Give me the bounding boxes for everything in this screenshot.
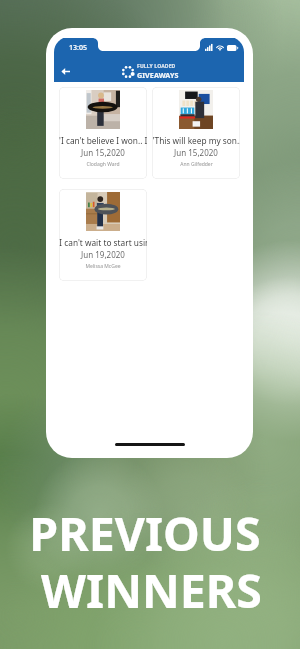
staticText: GIVEAWAYS [137,70,179,80]
staticText: Jun 19,2020 [81,249,125,260]
staticText: Melissa McGee [85,263,121,270]
button[interactable]: 'This will keep my son… [152,87,240,179]
button[interactable]: I can't wait to start usin… [59,189,147,281]
staticText: PREVIOUS [29,501,261,564]
staticText: Jun 15,2020 [81,147,125,158]
staticText: 'I can't believe I won.. I… [59,135,147,146]
staticText: Jun 15,2020 [174,147,218,158]
staticText: WINNERS [41,558,262,621]
button[interactable]: Back [56,62,75,81]
staticText: Clodagh Ward [86,161,120,168]
staticText: 13:05 [69,43,87,53]
staticText: FULLY LOADED [137,63,176,70]
staticText: Ann Gilfedder [180,161,213,168]
button[interactable]: 'I can't believe I won.. I… [59,87,147,179]
button[interactable]: Fully Loaded Giveaways [121,63,179,80]
staticText: 'This will keep my son… [152,135,240,146]
staticText: I can't wait to start usin… [59,237,147,248]
